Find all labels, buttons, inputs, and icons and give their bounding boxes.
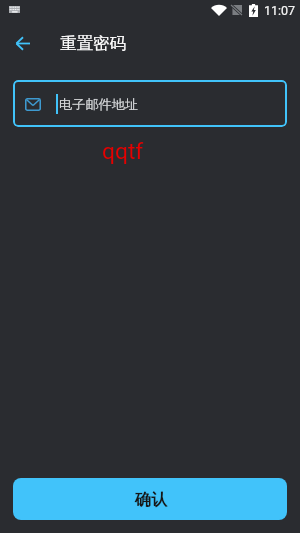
staticText: 11:07 bbox=[264, 3, 296, 18]
button[interactable]: Back bbox=[0, 22, 42, 64]
staticText: 重置密码 bbox=[60, 33, 126, 54]
button[interactable]: 电子邮件地址 bbox=[13, 80, 287, 127]
button[interactable]: 确认 bbox=[13, 478, 287, 520]
staticText: qqtf bbox=[102, 138, 144, 165]
staticText: 确认 bbox=[135, 490, 167, 510]
staticText: 电子邮件地址 bbox=[59, 96, 139, 113]
